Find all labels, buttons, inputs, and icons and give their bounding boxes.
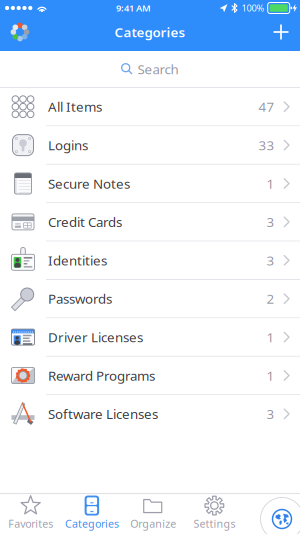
staticText: Categories xyxy=(114,23,185,41)
button[interactable]: Secure Notes xyxy=(0,165,300,203)
staticText: Favorites xyxy=(8,517,53,531)
button[interactable]: Identities xyxy=(0,242,300,280)
staticText: Search xyxy=(137,60,178,78)
button[interactable]: Software Licenses xyxy=(0,395,300,434)
button[interactable]: Favorites xyxy=(0,495,61,534)
staticText: 3 xyxy=(266,251,274,269)
button[interactable]: Add item xyxy=(262,17,300,47)
staticText: 1 xyxy=(266,175,274,192)
staticText: 9:41 AM xyxy=(116,2,151,14)
button[interactable]: Organize xyxy=(122,495,184,534)
staticText: 100% xyxy=(241,2,264,14)
staticText: Secure Notes xyxy=(48,175,130,192)
button[interactable]: Search xyxy=(0,51,300,87)
staticText: All Items xyxy=(48,98,102,115)
staticText: 3 xyxy=(266,213,274,231)
button[interactable]: Passwords xyxy=(0,280,300,318)
button[interactable]: Credit Cards xyxy=(0,203,300,242)
button[interactable]: Categories xyxy=(61,495,122,534)
button[interactable]: Logins xyxy=(0,126,300,165)
button[interactable]: Sync status xyxy=(0,17,40,47)
staticText: Credit Cards xyxy=(48,213,122,231)
button[interactable]: 1Browser xyxy=(260,497,300,534)
button[interactable]: Settings xyxy=(184,495,245,534)
staticText: Reward Programs xyxy=(48,367,155,384)
staticText: Organize xyxy=(130,517,176,531)
staticText: Logins xyxy=(48,136,88,154)
staticText: 1 xyxy=(266,367,274,384)
staticText: Settings xyxy=(193,517,235,531)
staticText: Identities xyxy=(48,251,107,269)
staticText: 2 xyxy=(266,290,274,307)
staticText: Categories xyxy=(65,517,119,531)
button[interactable]: All Items xyxy=(0,88,300,126)
staticText: 47 xyxy=(258,98,274,115)
button[interactable]: Reward Programs xyxy=(0,357,300,395)
staticText: Software Licenses xyxy=(48,405,158,423)
staticText: 3 xyxy=(266,405,274,423)
staticText: 33 xyxy=(258,136,274,154)
staticText: Passwords xyxy=(48,290,112,307)
button[interactable]: Driver Licenses xyxy=(0,318,300,357)
staticText: 1 xyxy=(266,328,274,346)
staticText: Driver Licenses xyxy=(48,328,143,346)
